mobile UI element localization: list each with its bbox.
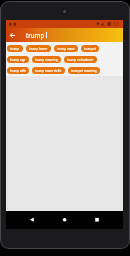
staticText: trumpet	[84, 47, 96, 51]
staticText: trump tower	[29, 47, 48, 51]
staticText: trump tower delhi	[35, 69, 62, 73]
button[interactable]: trump	[7, 45, 23, 52]
staticText: 8:17	[109, 21, 119, 28]
button[interactable]: Back	[6, 28, 22, 42]
button[interactable]: Back	[24, 211, 44, 229]
staticText: trump news	[57, 47, 75, 51]
staticText: trump	[26, 31, 45, 39]
staticText: trump	[10, 47, 20, 51]
button[interactable]: Home	[55, 211, 75, 229]
button[interactable]: trump on kashmir	[64, 56, 97, 63]
button[interactable]: trumpet	[81, 45, 99, 52]
button[interactable]: trump tower delhi	[32, 67, 65, 74]
button[interactable]: Recent apps	[88, 211, 108, 229]
staticText: trump on kashmir	[67, 58, 94, 62]
staticText: trump age	[10, 58, 26, 62]
button[interactable]: trump age	[7, 56, 29, 63]
staticText: trump meaning	[35, 58, 58, 62]
button[interactable]: trumpet meaning	[68, 67, 100, 74]
button[interactable]: trump news	[54, 45, 78, 52]
staticText: trump wife	[10, 69, 26, 73]
button[interactable]: trump wife	[7, 67, 29, 74]
button[interactable]: trump tower	[26, 45, 51, 52]
button[interactable]: trump meaning	[32, 56, 61, 63]
staticText: trumpet meaning	[71, 69, 97, 73]
